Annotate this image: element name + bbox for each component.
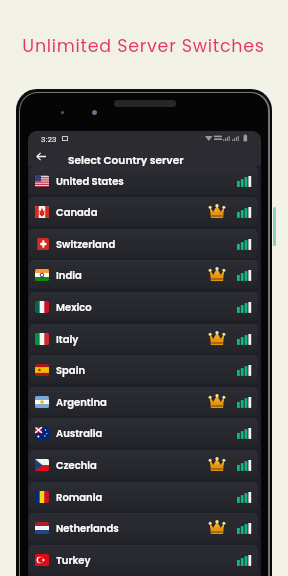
staticText: Australia xyxy=(56,426,103,440)
staticText: Netherlands xyxy=(56,521,119,535)
staticText: Switzerland xyxy=(56,237,116,251)
button[interactable]: Netherlands xyxy=(29,513,258,542)
staticText: Unlimited Server Switches xyxy=(22,34,265,54)
button[interactable]: Turkey xyxy=(29,545,258,574)
button[interactable]: India xyxy=(29,260,258,289)
button[interactable]: Czechia xyxy=(29,450,258,479)
staticText: Romania xyxy=(56,490,103,504)
staticText: Italy xyxy=(56,332,79,346)
button[interactable]: Canada xyxy=(29,197,258,226)
staticText: Argentina xyxy=(56,395,107,409)
staticText: Czechia xyxy=(56,458,97,472)
staticText: Canada xyxy=(56,205,98,219)
button[interactable]: Argentina xyxy=(29,387,258,416)
button[interactable]: Switzerland xyxy=(29,229,258,258)
staticText: Spain xyxy=(56,363,86,377)
staticText: United States xyxy=(56,174,124,188)
staticText: Turkey xyxy=(56,553,91,567)
staticText: 3:23 xyxy=(41,135,57,144)
button[interactable]: Spain xyxy=(29,355,258,384)
button[interactable]: United States xyxy=(29,166,258,195)
button[interactable]: Romania xyxy=(29,482,258,511)
staticText: Mexico xyxy=(56,300,92,314)
staticText: India xyxy=(56,268,82,282)
button[interactable]: Back xyxy=(30,147,52,166)
button[interactable]: Italy xyxy=(29,324,258,353)
staticText: Select Country server xyxy=(68,153,184,168)
button[interactable]: Australia xyxy=(29,418,258,447)
button[interactable]: Mexico xyxy=(29,292,258,321)
